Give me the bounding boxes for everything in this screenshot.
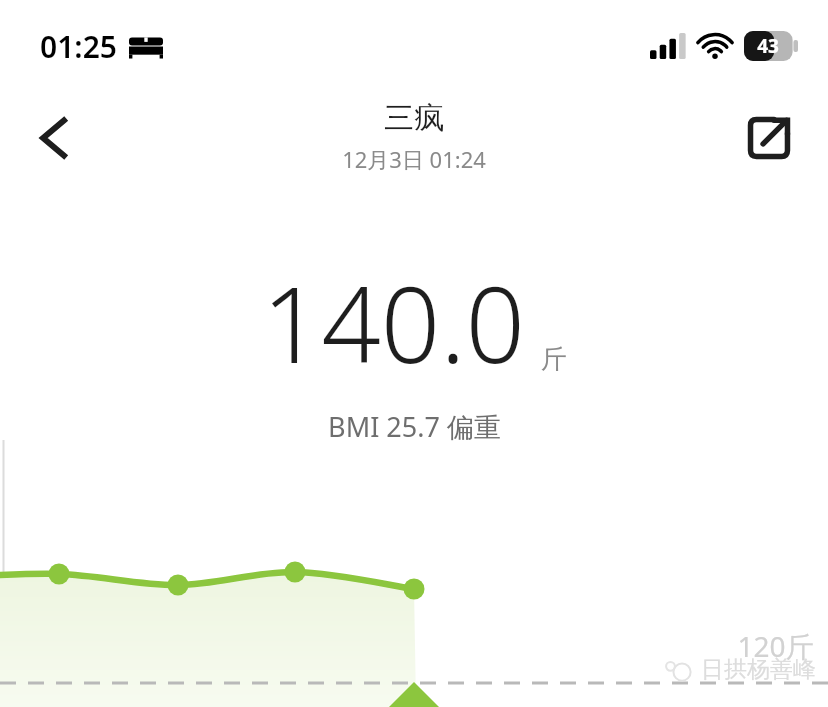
staticText: 12月3日 01:24 — [342, 144, 486, 174]
staticText: BMI 25.7 偏重 — [328, 408, 501, 445]
button[interactable]: Share — [738, 107, 800, 169]
staticText: 140.0 — [262, 252, 525, 394]
staticText: 日拱杨善峰 — [701, 655, 816, 684]
staticText: 01:25 — [40, 26, 117, 67]
staticText: 斤 — [541, 343, 567, 376]
staticText: 120斤 — [737, 627, 814, 665]
staticText: 43 — [757, 33, 779, 59]
button[interactable]: Back — [22, 107, 84, 169]
staticText: 三疯 — [384, 99, 444, 137]
